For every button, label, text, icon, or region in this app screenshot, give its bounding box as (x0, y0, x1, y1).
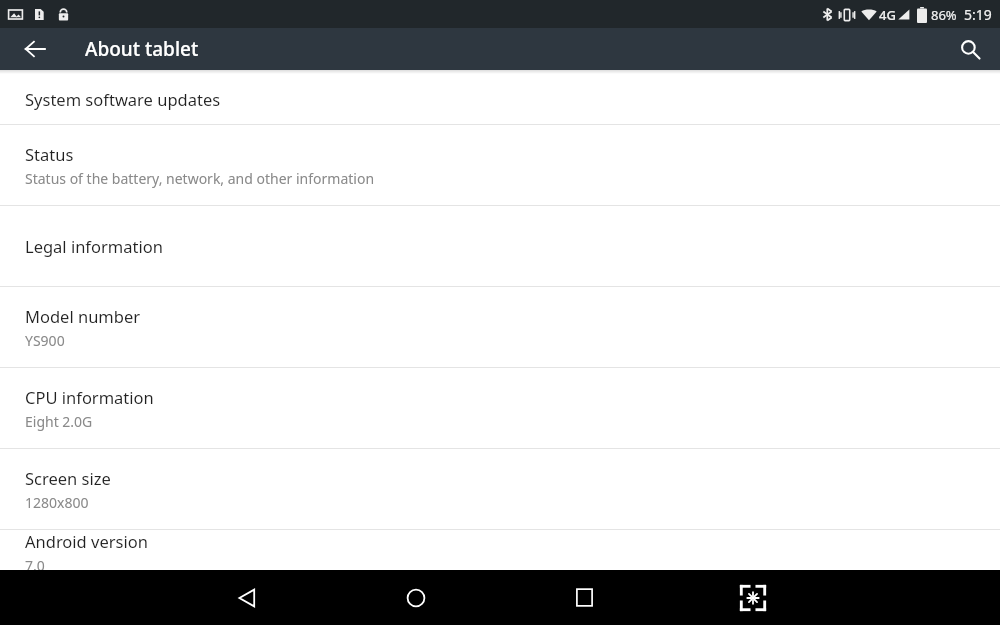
button[interactable]: Recent apps (538, 570, 630, 625)
staticText: 4G (879, 6, 896, 24)
button[interactable]: Home (370, 570, 462, 625)
button[interactable]: Back (201, 570, 293, 625)
button[interactable]: Model number (0, 287, 1000, 367)
staticText: 1280x800 (25, 493, 89, 512)
button[interactable]: Screen size (0, 449, 1000, 529)
staticText: CPU information (25, 386, 154, 408)
staticText: 86% (931, 6, 957, 24)
button[interactable]: Search (950, 29, 990, 69)
button[interactable]: Screenshot (707, 570, 799, 625)
staticText: Legal information (25, 235, 163, 257)
staticText: 7.0 (25, 556, 45, 570)
button[interactable]: System software updates (0, 74, 1000, 124)
staticText: Android version (25, 530, 148, 552)
staticText: 5:19 (964, 5, 992, 24)
button[interactable]: Android version (0, 530, 1000, 570)
button[interactable]: Legal information (0, 206, 1000, 286)
button[interactable]: Status (0, 125, 1000, 205)
staticText: YS900 (25, 331, 65, 350)
staticText: Status (25, 143, 74, 165)
staticText: Screen size (25, 467, 111, 489)
staticText: System software updates (25, 88, 221, 110)
staticText: About tablet (85, 36, 199, 62)
staticText: Model number (25, 305, 141, 327)
staticText: Status of the battery, network, and othe… (25, 169, 375, 188)
staticText: Eight 2.0G (25, 412, 93, 431)
button[interactable]: Back (15, 29, 55, 69)
button[interactable]: CPU information (0, 368, 1000, 448)
